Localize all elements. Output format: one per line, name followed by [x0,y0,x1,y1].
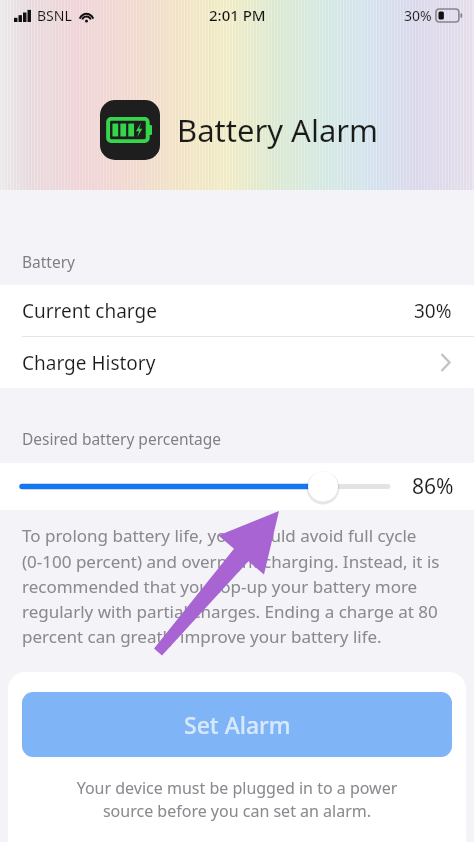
staticText: 2:01 PM [209,5,266,25]
staticText: BSNL [37,6,72,25]
staticText: 86% [412,472,454,501]
button[interactable]: Set Alarm [22,692,452,757]
other: Battery Alarm app icon [100,100,160,160]
button[interactable]: Current charge [0,285,474,336]
staticText: Battery Alarm [177,109,379,151]
staticText: Charge History [22,350,156,376]
staticText: 30% [404,6,432,25]
button[interactable]: Charge History [0,337,474,388]
staticText: Battery [22,251,76,272]
button[interactable]: Desired battery percentage slider [0,463,474,510]
staticText: To prolong battery life, you should avoi… [22,524,456,648]
staticText: Your device must be plugged in to a powe… [50,777,424,822]
staticText: Current charge [22,298,157,324]
staticText: Desired battery percentage [22,428,222,449]
staticText: Set Alarm [184,709,291,740]
staticText: 30% [414,298,452,324]
